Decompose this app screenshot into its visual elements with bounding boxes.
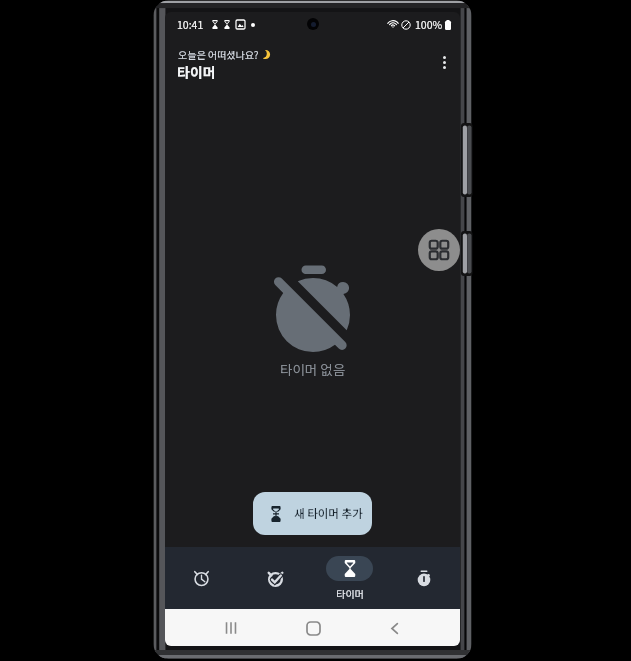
button[interactable]: Stopwatch — [400, 547, 447, 609]
staticText: 오늘은 어떠셨나요? — [178, 47, 259, 61]
button[interactable]: Edge panel — [418, 229, 460, 271]
staticText: 타이머 — [336, 586, 364, 600]
button[interactable]: 새 타이머 추가 — [253, 492, 372, 535]
button[interactable]: Alarm — [178, 547, 225, 609]
staticText: 100% — [415, 17, 443, 32]
button[interactable]: Home — [296, 611, 330, 645]
button[interactable]: Recents — [214, 611, 248, 645]
staticText: 새 타이머 추가 — [294, 505, 363, 522]
button[interactable]: 타이머 — [326, 547, 373, 609]
button[interactable]: Back — [377, 611, 411, 645]
button[interactable]: Alarm check — [252, 547, 299, 609]
button[interactable]: More options — [430, 48, 459, 77]
staticText: 10:41 — [177, 17, 204, 32]
staticText: 타이머 — [177, 62, 216, 82]
staticText: 타이머 없음 — [280, 359, 346, 379]
